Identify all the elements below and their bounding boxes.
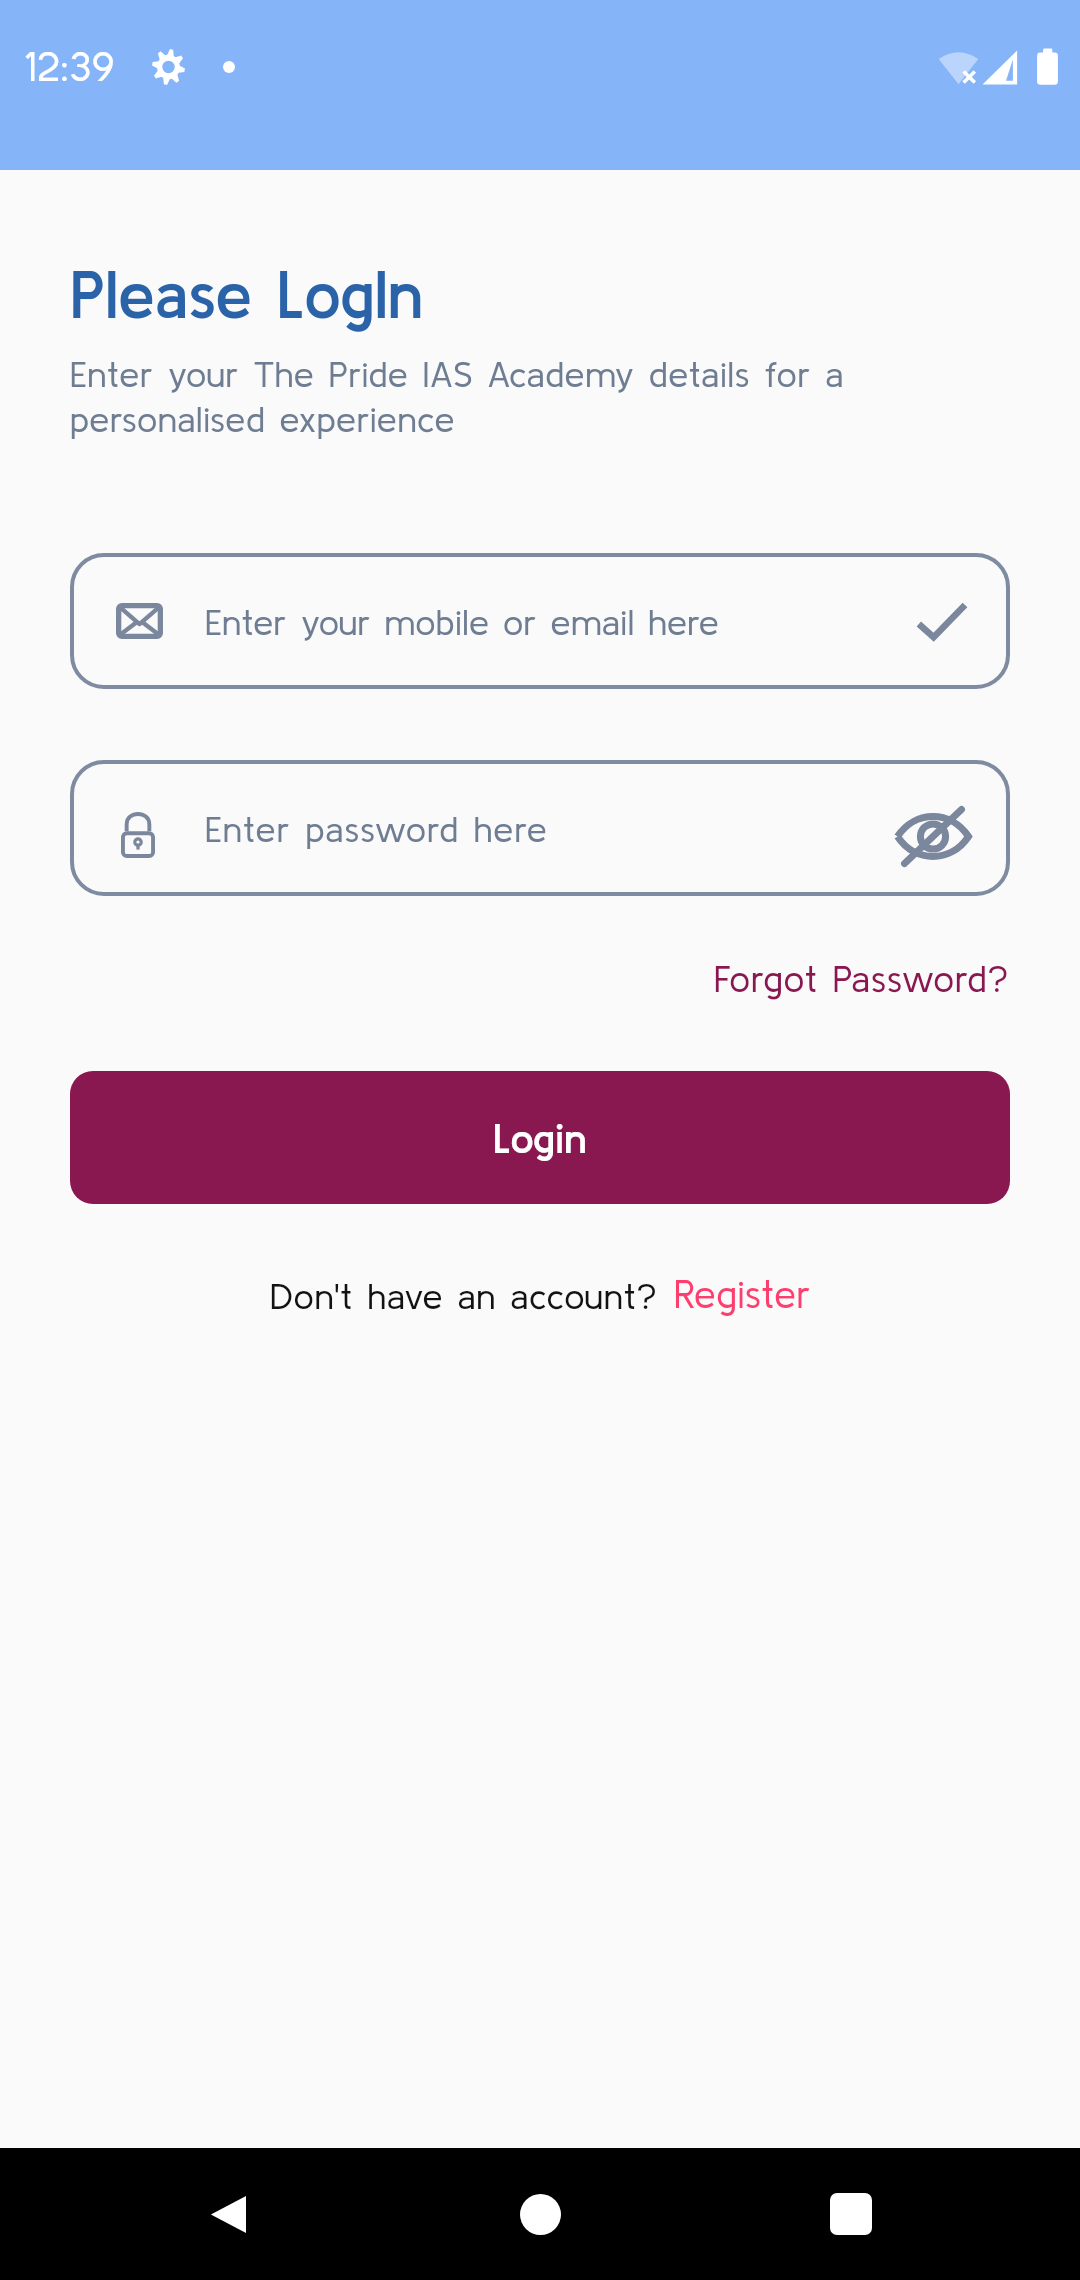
staticText: Don't have an account? (270, 1275, 658, 1316)
button[interactable]: Recent apps (751, 2148, 951, 2280)
button[interactable] (70, 760, 1010, 896)
button[interactable]: Home (440, 2148, 640, 2280)
button[interactable]: Register (674, 1272, 811, 1316)
button[interactable] (70, 553, 1010, 689)
button[interactable]: Show password (874, 796, 992, 876)
staticText: Enter your The Pride IAS Academy details… (70, 353, 1030, 439)
button[interactable]: Forgot Password? (714, 958, 1010, 1000)
button[interactable]: Verified (898, 589, 986, 655)
button[interactable]: Login (70, 1071, 1010, 1204)
staticText: Login (493, 1114, 587, 1162)
staticText: Please LogIn (70, 257, 423, 332)
button[interactable]: Back (126, 2148, 326, 2280)
staticText: Enter your mobile or email here (205, 601, 720, 642)
staticText: 12:39 (24, 43, 116, 90)
staticText: Enter password here (205, 808, 548, 849)
